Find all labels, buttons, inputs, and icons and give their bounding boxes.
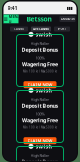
staticText: LOGGED IN xyxy=(60,17,74,21)
staticText: CLAIM NOW xyxy=(27,82,52,87)
button[interactable]: LOGGED IN xyxy=(59,16,75,22)
staticText: 9:41 xyxy=(7,4,17,12)
staticText: 100% xyxy=(35,55,44,61)
staticText: Wagering Free xyxy=(22,61,58,68)
staticText: SPORT xyxy=(57,27,66,31)
staticText: swish xyxy=(35,31,51,38)
staticText: Deposit Bonus xyxy=(21,102,58,109)
staticText: Betsson xyxy=(26,15,51,23)
staticText: ▮▮▮ xyxy=(66,6,72,10)
staticText: MENU xyxy=(8,14,18,24)
button[interactable]: ≡ xyxy=(3,14,18,23)
staticText: Deposit Bonus xyxy=(21,158,58,162)
staticText: LIVE CASINO xyxy=(33,27,49,31)
staticText: High Roller xyxy=(30,97,49,102)
staticText: swish xyxy=(35,87,51,94)
staticText: 100% xyxy=(35,111,44,117)
staticText: High Roller xyxy=(30,153,49,158)
staticText: ≡ xyxy=(3,16,7,22)
staticText: Min 100 kr / Max 5000 kr xyxy=(23,70,57,73)
button[interactable]: CLAIM NOW xyxy=(23,81,56,88)
button[interactable]: SPORT xyxy=(54,26,70,31)
staticText: CLAIM NOW xyxy=(27,138,52,143)
staticText: swish xyxy=(35,143,51,150)
staticText: Min 100 kr / Max 5000 kr xyxy=(23,126,57,129)
staticText: Deposit Bonus xyxy=(21,46,58,53)
staticText: High Roller xyxy=(30,41,49,46)
button[interactable]: LIVE CASINO xyxy=(31,26,51,31)
button[interactable]: CLAIM NOW xyxy=(23,137,56,144)
staticText: Wagering Free xyxy=(22,117,58,124)
staticText: CASINO xyxy=(14,27,24,31)
button[interactable]: CASINO xyxy=(10,26,28,31)
